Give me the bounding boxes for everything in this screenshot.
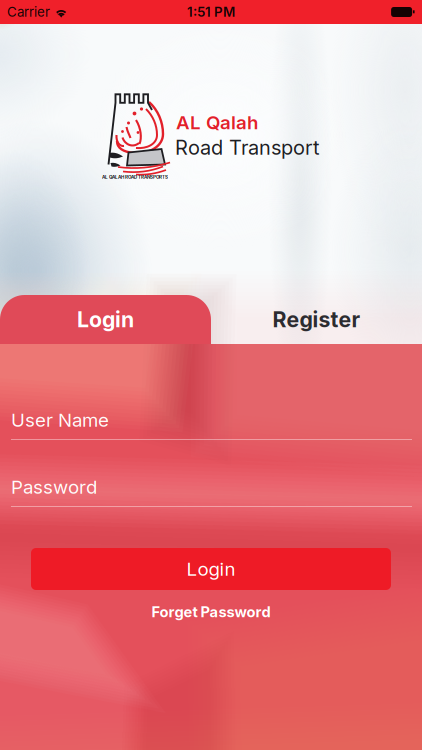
staticText: Password bbox=[11, 476, 97, 498]
staticText: AL QALAH ROAD TRANSPORTS bbox=[102, 174, 168, 180]
button[interactable]: Forget Password bbox=[111, 604, 311, 620]
staticText: Register bbox=[272, 307, 360, 332]
button[interactable]: Register bbox=[211, 295, 422, 344]
staticText: Road Transport bbox=[175, 135, 320, 160]
button[interactable]: Login bbox=[31, 548, 391, 590]
staticText: Login bbox=[77, 307, 134, 332]
staticText: 1:51 PM bbox=[187, 4, 235, 20]
staticText: Carrier bbox=[7, 4, 50, 20]
staticText: AL Qalah bbox=[176, 111, 258, 134]
staticText: User Name bbox=[11, 409, 109, 431]
button[interactable]: Login bbox=[0, 295, 211, 344]
staticText: Forget Password bbox=[151, 603, 270, 621]
staticText: Login bbox=[186, 558, 235, 580]
